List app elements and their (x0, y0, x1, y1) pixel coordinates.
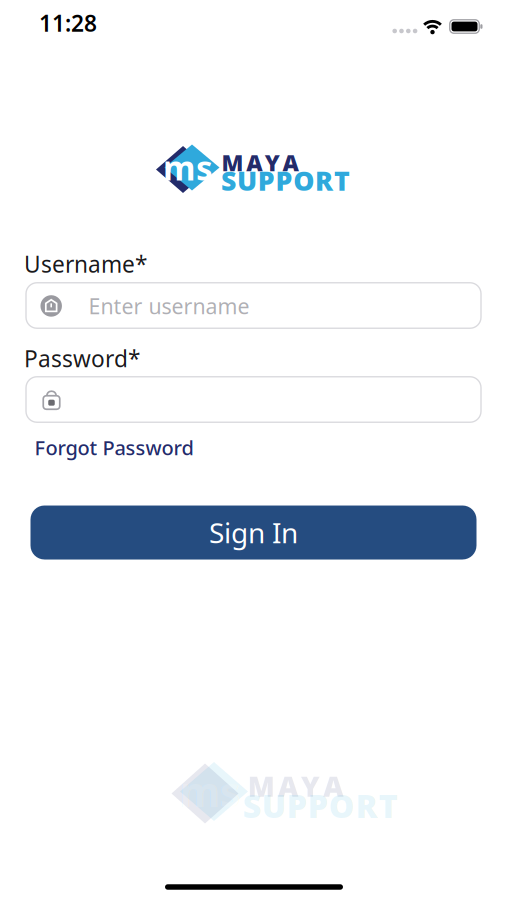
staticText: 11:28 (39, 8, 97, 38)
staticText: T (379, 784, 398, 827)
staticText: Enter username (88, 292, 249, 320)
staticText: U (237, 163, 257, 198)
staticText: Forgot Password (34, 434, 193, 461)
button[interactable]: Sign In (30, 505, 476, 559)
staticText: O (329, 784, 355, 827)
button[interactable]: Forgot Password (34, 434, 193, 461)
staticText: Y (301, 767, 320, 805)
staticText: Sign In (209, 514, 298, 551)
staticText: Password* (24, 343, 140, 373)
staticText: ms (179, 764, 240, 818)
staticText: M (248, 767, 275, 805)
staticText: P (287, 784, 307, 827)
staticText: ms (163, 145, 213, 190)
button[interactable]: Enter username (26, 283, 481, 328)
staticText: O (293, 163, 314, 198)
staticText: P (275, 163, 292, 198)
staticText: A (323, 767, 343, 805)
staticText: P (308, 784, 328, 827)
staticText: T (334, 163, 350, 198)
staticText: Username* (24, 249, 147, 279)
staticText: S (243, 784, 261, 827)
staticText: A (282, 147, 298, 177)
staticText: Y (265, 147, 280, 177)
staticText: A (278, 767, 298, 805)
staticText: R (356, 784, 378, 827)
staticText: M (222, 147, 244, 177)
staticText: R (315, 163, 333, 198)
button[interactable]: Password (26, 377, 481, 422)
staticText: P (258, 163, 275, 198)
staticText: S (221, 163, 236, 198)
staticText: A (246, 147, 262, 177)
staticText: U (262, 784, 286, 827)
